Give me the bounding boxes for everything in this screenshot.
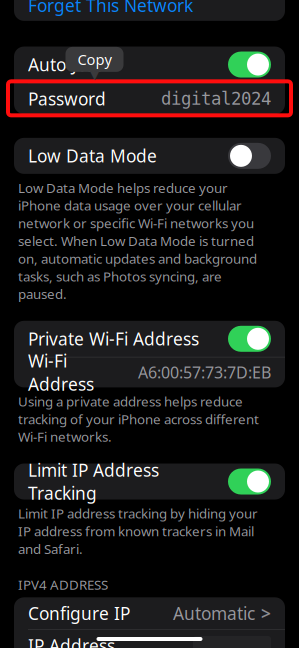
staticText: >: [261, 602, 271, 625]
staticText: ▼: [90, 68, 99, 82]
staticText: digital2024: [161, 89, 271, 108]
staticText: Using a private address helps reduce tra…: [18, 392, 259, 445]
staticText: IPV4 ADDRESS: [18, 576, 108, 593]
staticText: Limit IP address tracking by hiding your…: [18, 504, 258, 558]
button[interactable]: Password: [14, 83, 285, 114]
staticText: Auto-Join: [28, 53, 102, 76]
staticText: Copy: [77, 50, 111, 69]
staticText: A6:00:57:73:7D:EB: [138, 362, 271, 383]
staticText: Low Data Mode: [28, 144, 157, 167]
staticText: Private Wi-Fi Address: [28, 327, 199, 350]
staticText: Configure IP: [28, 602, 130, 625]
staticText: Automatic: [173, 602, 255, 625]
button[interactable]: Low Data Mode: [14, 138, 285, 174]
button[interactable]: Private Wi-Fi Address: [14, 321, 285, 357]
staticText: Low Data Mode helps reduce your iPhone d…: [18, 179, 257, 303]
button[interactable]: Forget This Network: [14, 0, 285, 21]
button[interactable]: Configure IP: [14, 597, 285, 629]
button[interactable]: Auto-Join: [14, 47, 285, 83]
staticText: Forget This Network: [28, 0, 193, 17]
button[interactable]: Limit IP Address Tracking: [14, 463, 285, 499]
staticText: Wi-Fi Address: [28, 349, 94, 395]
staticText: IP Address: [28, 634, 115, 648]
staticText: Limit IP Address Tracking: [28, 458, 159, 504]
staticText: Password: [28, 87, 106, 110]
